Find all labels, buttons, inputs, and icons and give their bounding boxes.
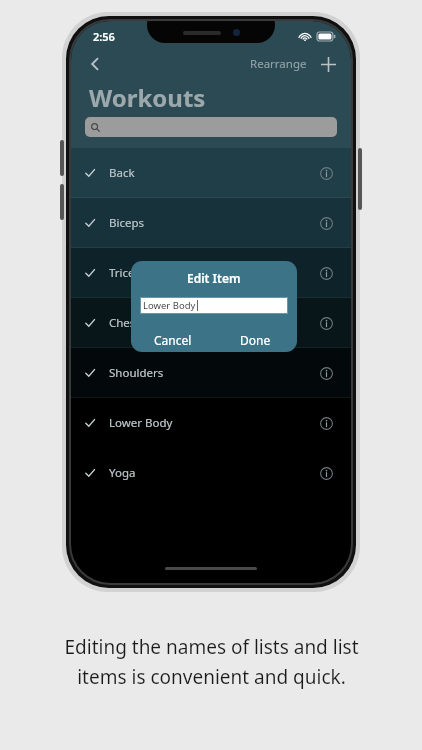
button[interactable]: Info about Chest — [315, 312, 337, 334]
staticText: Triceps — [109, 265, 148, 281]
button[interactable]: Lower Body — [140, 297, 288, 314]
staticText: items is convenient and quick. — [77, 664, 346, 690]
staticText: Done — [240, 332, 271, 347]
button[interactable]: Back — [79, 49, 111, 79]
button[interactable]: Biceps — [71, 198, 351, 248]
button[interactable]: Info about Back — [315, 162, 337, 184]
staticText: 2:56 — [93, 29, 115, 44]
staticText: Rearrange — [250, 56, 307, 72]
button[interactable]: Shoulders — [71, 348, 351, 398]
staticText: Chest — [109, 315, 140, 331]
staticText: Yoga — [109, 465, 136, 481]
button[interactable]: Done — [214, 327, 297, 352]
button[interactable]: Chest — [71, 298, 351, 348]
staticText: Workouts — [89, 81, 206, 114]
button[interactable]: Info about Triceps — [315, 262, 337, 284]
staticText: Shoulders — [109, 365, 164, 381]
button[interactable]: Add — [313, 49, 343, 79]
button[interactable]: Info about Yoga — [315, 462, 337, 484]
button[interactable]: Info about Lower Body — [315, 412, 337, 434]
staticText: Edit Item — [187, 270, 241, 286]
staticText: Cancel — [154, 332, 192, 347]
staticText: Editing the names of lists and list — [64, 634, 359, 660]
button[interactable]: Info about Shoulders — [315, 362, 337, 384]
button[interactable]: Yoga — [71, 448, 351, 498]
button[interactable]: Cancel — [131, 327, 214, 352]
staticText: Biceps — [109, 215, 145, 231]
staticText: Back — [109, 165, 135, 181]
button[interactable]: Back — [71, 148, 351, 198]
button[interactable]: Info about Biceps — [315, 212, 337, 234]
button[interactable]: Triceps — [71, 248, 351, 298]
button[interactable]: Rearrange — [244, 52, 313, 76]
staticText: Lower Body — [109, 415, 173, 431]
button[interactable]: Lower Body — [71, 398, 351, 448]
button[interactable] — [85, 117, 337, 137]
staticText: Lower Body — [143, 299, 196, 312]
